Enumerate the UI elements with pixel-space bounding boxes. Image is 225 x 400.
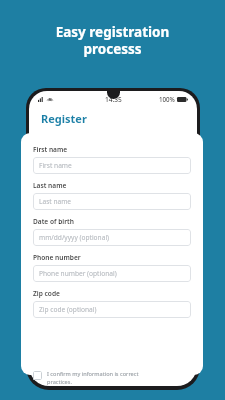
button[interactable]: mm/dd/yyyy (optional) xyxy=(33,229,191,246)
staticText: Register xyxy=(41,111,87,126)
other: Consent checkbox xyxy=(33,371,42,380)
staticText: 14:35 xyxy=(105,95,122,104)
button[interactable]: Phone number (optional) xyxy=(33,265,191,282)
staticText: Zip code xyxy=(33,289,60,298)
button[interactable]: Consent checkbox xyxy=(33,370,195,386)
staticText: 100% xyxy=(159,95,175,103)
staticText: Easy registration processs xyxy=(0,23,225,58)
staticText: First name xyxy=(33,145,68,154)
staticText: First name xyxy=(39,161,72,170)
button[interactable]: Zip code (optional) xyxy=(33,301,191,318)
staticText: Last name xyxy=(33,181,67,190)
staticText: I confirm my information is correct xyxy=(47,370,139,378)
staticText: Date of birth xyxy=(33,217,74,226)
staticText: mm/dd/yyyy (optional) xyxy=(39,233,110,242)
staticText: Phone number xyxy=(33,253,81,262)
staticText: Last name xyxy=(39,197,72,206)
staticText: Zip code (optional) xyxy=(39,305,97,314)
staticText: Phone number (optional) xyxy=(39,269,117,278)
button[interactable]: First name xyxy=(33,157,191,174)
button[interactable]: Last name xyxy=(33,193,191,210)
staticText: practices. xyxy=(47,378,72,386)
